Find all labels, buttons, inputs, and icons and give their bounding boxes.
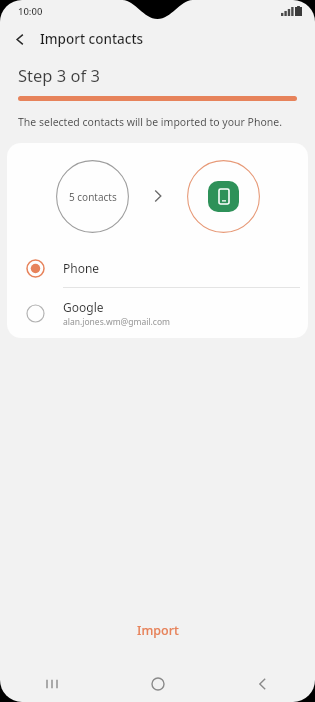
staticText: Import contacts [40,30,144,48]
button[interactable]: Google [7,288,308,338]
button[interactable]: Phone [7,249,308,287]
button[interactable]: Home [105,665,210,702]
button[interactable]: Import [0,613,315,647]
staticText: Step 3 of 3 [18,64,100,86]
button[interactable]: Back [210,665,315,702]
staticText: Google [63,299,104,315]
button[interactable]: Recents [0,665,105,702]
staticText: Phone [63,260,100,276]
staticText: alan.jones.wm@gmail.com [63,316,171,328]
staticText: Import [137,622,179,639]
button[interactable]: Back [0,22,40,56]
staticText: 10:00 [18,5,43,18]
staticText: The selected contacts will be imported t… [18,115,283,129]
staticText: 5 contacts [69,190,117,204]
